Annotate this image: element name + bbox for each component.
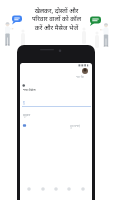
staticText: नया मैसेज (23, 87, 36, 92)
staticText: खेलकर, दोस्तों और परिवार वालों को कॉल कर… (0, 6, 113, 32)
button[interactable]: Nav 1 (38, 184, 48, 194)
staticText: ग्रुप बनाएं (70, 124, 80, 128)
button[interactable]: Nav 4 (78, 184, 88, 194)
button[interactable]: Nav 2 (51, 184, 61, 194)
button[interactable]: Nav 0 (24, 184, 34, 194)
button[interactable]: Nav 3 (64, 184, 74, 194)
button[interactable]: Account (82, 68, 88, 74)
button[interactable]: ग्रुप बनाएं (22, 120, 89, 131)
staticText: नया चैट (76, 75, 84, 79)
staticText: सुझाव (23, 113, 31, 117)
button[interactable]: Menu (22, 83, 26, 87)
staticText: टू (23, 100, 25, 104)
